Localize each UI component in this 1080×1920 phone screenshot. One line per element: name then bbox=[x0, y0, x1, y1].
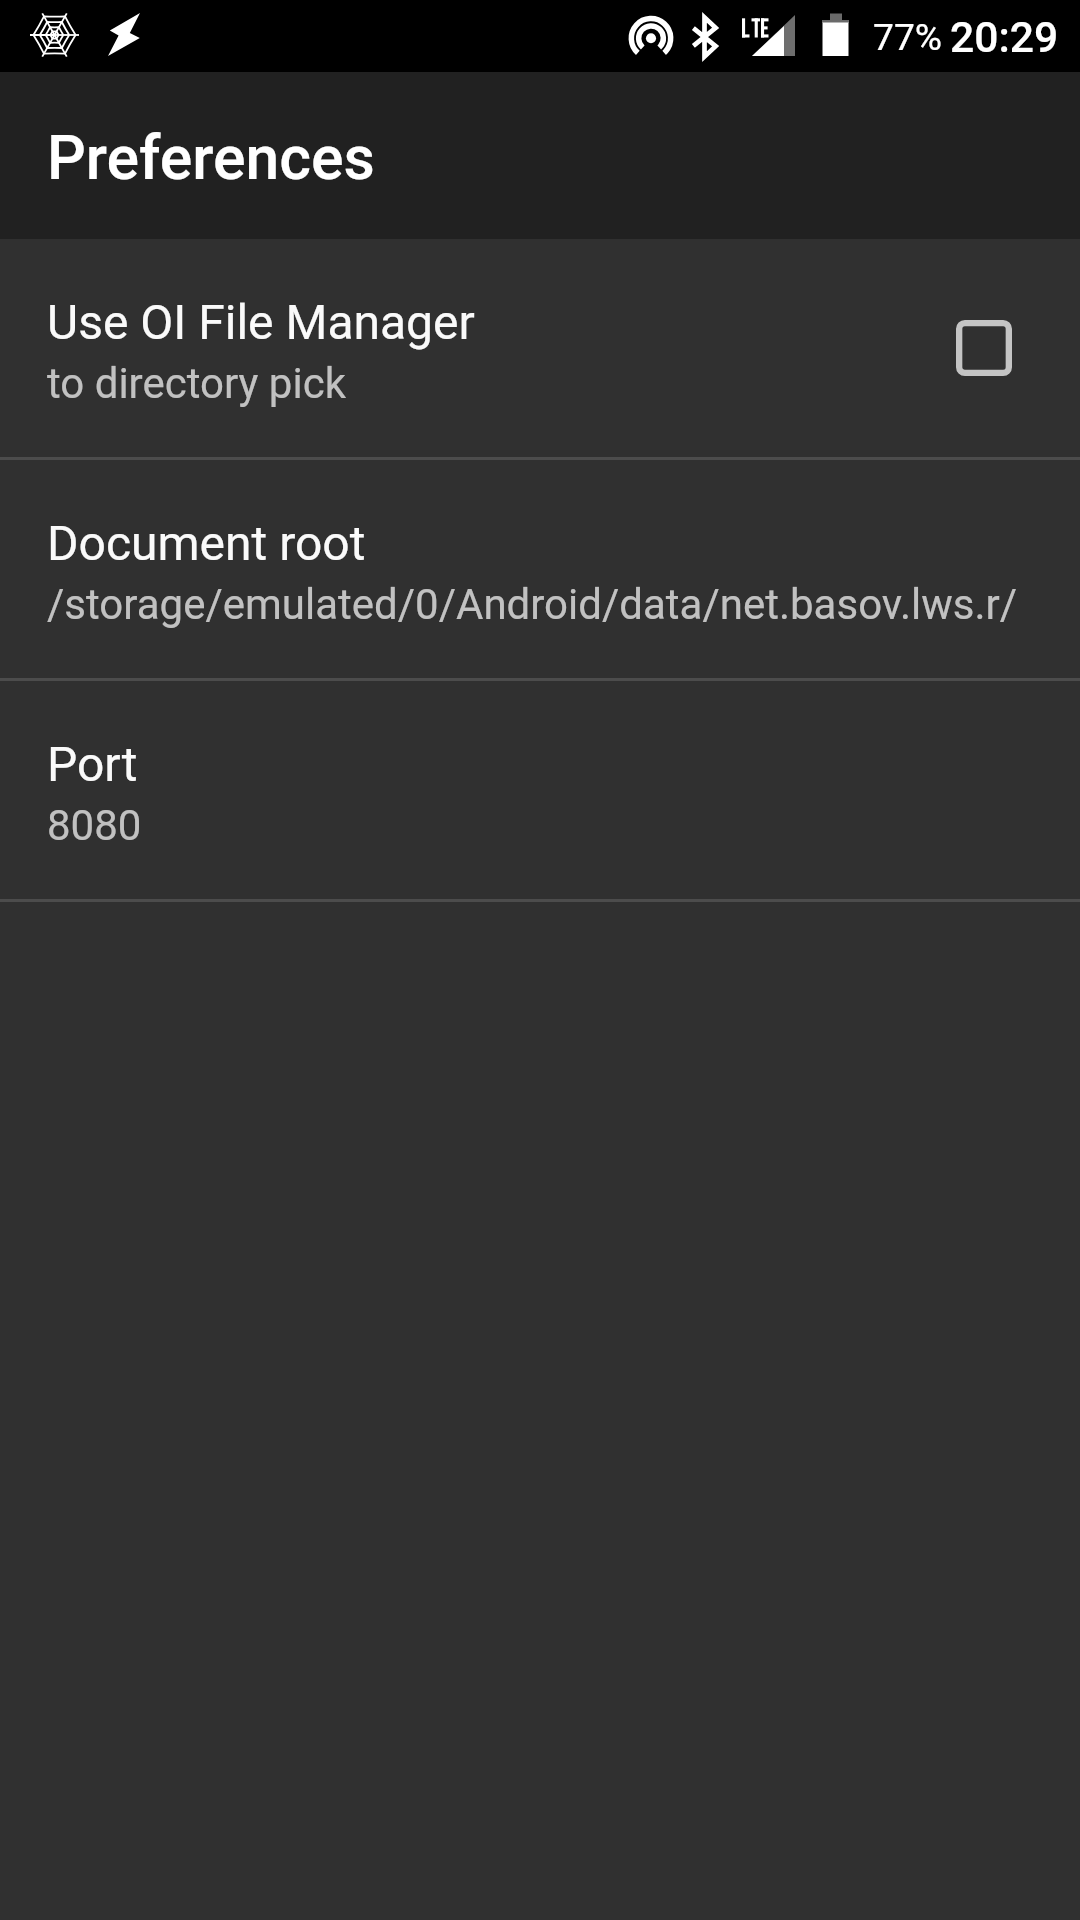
other: Web server running bbox=[30, 10, 79, 60]
staticText: 8080 bbox=[47, 801, 142, 850]
staticText: 77% bbox=[873, 15, 943, 59]
staticText: Preferences bbox=[47, 123, 375, 194]
other: Battery 77 percent bbox=[820, 13, 851, 57]
button[interactable]: Use OI File Manager bbox=[0, 239, 1080, 457]
staticText: 20:29 bbox=[950, 12, 1059, 62]
staticText: /storage/emulated/0/Android/data/net.bas… bbox=[47, 580, 1018, 629]
button[interactable]: Port bbox=[0, 681, 1080, 899]
other: LTE signal bbox=[741, 14, 796, 57]
button[interactable]: Document root bbox=[0, 460, 1080, 678]
button[interactable]: Use OI File Manager checkbox bbox=[930, 294, 1038, 402]
staticText: to directory pick bbox=[47, 359, 346, 408]
staticText: Port bbox=[47, 736, 138, 792]
other: Charging bbox=[108, 13, 140, 56]
staticText: Use OI File Manager bbox=[47, 294, 475, 350]
other: Hotspot bbox=[629, 16, 673, 58]
staticText: Document root bbox=[47, 515, 366, 571]
